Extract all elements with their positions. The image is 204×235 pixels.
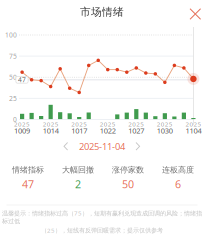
button[interactable]: Previous day (59, 137, 73, 155)
staticText: 2025 (43, 120, 59, 128)
staticText: 100 (5, 30, 17, 40)
staticText: 2025 (157, 120, 173, 128)
staticText: 1017 (71, 125, 87, 136)
staticText: 47 (22, 177, 34, 191)
staticText: 2025 (71, 120, 87, 128)
staticText: 2025 (185, 120, 201, 128)
staticText: 1027 (128, 125, 144, 136)
staticText: 涨停家数 (112, 165, 144, 175)
button[interactable]: Close (186, 5, 204, 23)
staticText: 2025 (100, 120, 116, 128)
staticText: 1009 (14, 125, 30, 136)
staticText: 情绪指标 (12, 165, 44, 175)
staticText: 2 (75, 177, 81, 191)
staticText: 50 (9, 73, 17, 82)
staticText: 1014 (43, 125, 59, 136)
staticText: 大幅回撤 (62, 165, 94, 175)
staticText: 0 (13, 115, 17, 124)
staticText: 市场情绪 (80, 5, 124, 19)
staticText: 1022 (100, 125, 116, 136)
staticText: 温馨提示：情绪指标过高（75），短期有赢利兑现造成回调的风险；情绪指标过低 (2, 209, 202, 225)
staticText: 1030 (157, 125, 173, 136)
staticText: 连板高度 (162, 165, 194, 175)
staticText: 2025-11-04 (79, 140, 125, 153)
staticText: 2025 (14, 120, 30, 128)
staticText: 25 (9, 94, 17, 103)
staticText: 2025 (128, 120, 144, 128)
staticText: 50 (122, 177, 134, 191)
staticText: 47 (18, 75, 26, 84)
staticText: 75 (9, 52, 17, 61)
button[interactable]: Next day (131, 137, 145, 155)
staticText: 1104 (185, 125, 201, 136)
staticText: 6 (175, 177, 181, 191)
staticText: （25），短线有反弹回暖需求；提示仅供参考 (41, 226, 163, 234)
